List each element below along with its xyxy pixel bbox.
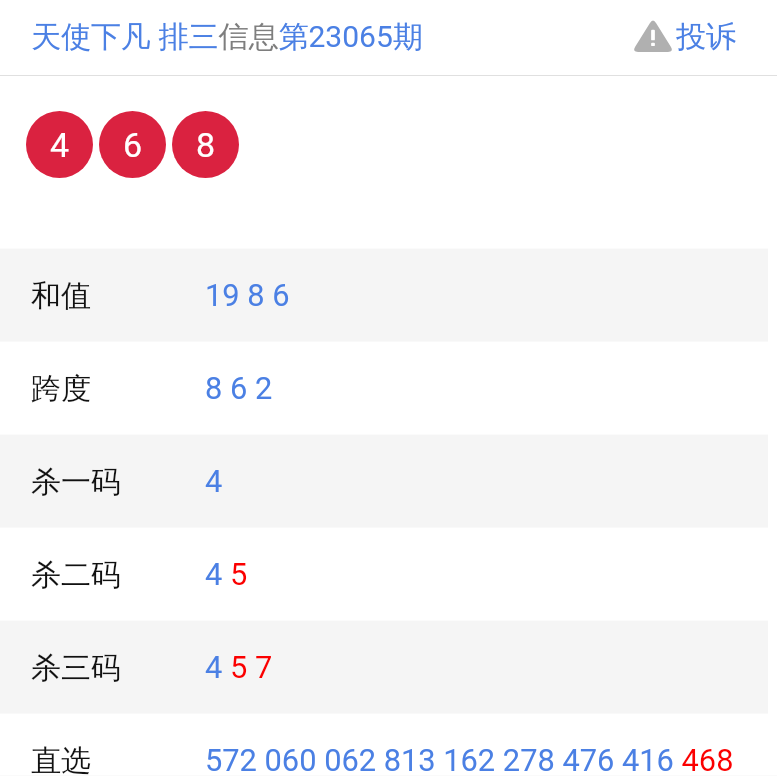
staticText: 4 5	[205, 556, 248, 592]
staticText: 19 8 6	[205, 277, 290, 313]
button[interactable]: 和值	[0, 249, 777, 342]
staticText: 4 5 7	[205, 649, 273, 685]
staticText: 4	[50, 125, 70, 165]
staticText: 572 060 062 813 162 278 476 416 468	[205, 742, 734, 778]
staticText: 杀二码	[31, 556, 121, 594]
staticText: 杀三码	[31, 649, 121, 687]
button[interactable]: 杀二码	[0, 528, 777, 621]
staticText: 8 6 2	[205, 370, 273, 406]
button[interactable]: 6	[99, 111, 166, 178]
staticText: 投诉	[676, 18, 736, 56]
other: 投诉 report	[632, 18, 674, 52]
button[interactable]: 8	[172, 111, 239, 178]
button[interactable]: 投诉 report	[629, 18, 736, 56]
staticText: 8	[196, 125, 216, 165]
staticText: 杀一码	[31, 463, 121, 501]
button[interactable]: 4	[26, 111, 93, 178]
staticText: 6	[123, 125, 143, 165]
staticText: 天使下凡 排三信息第23065期	[31, 18, 423, 56]
button[interactable]: 直选	[0, 714, 777, 783]
staticText: 跨度	[31, 370, 91, 408]
button[interactable]: 杀一码	[0, 435, 777, 528]
button[interactable]: 杀三码	[0, 621, 777, 714]
staticText: 和值	[31, 277, 91, 315]
staticText: 直选	[31, 742, 91, 780]
button[interactable]: 跨度	[0, 342, 777, 435]
staticText: 4	[205, 463, 223, 499]
